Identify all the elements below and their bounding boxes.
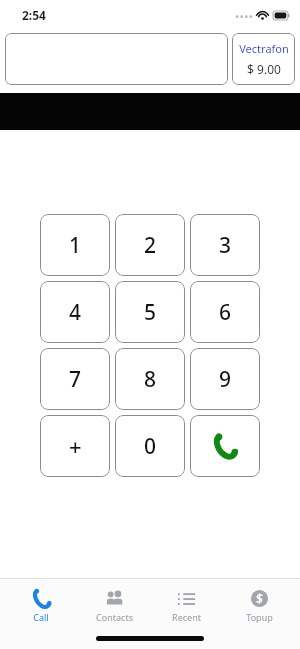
staticText: $ 9.00: [247, 61, 281, 77]
button[interactable]: 5: [115, 281, 185, 343]
staticText: Vectrafon: [239, 41, 289, 56]
button[interactable]: 6: [190, 281, 260, 343]
button[interactable]: 7: [40, 348, 110, 410]
staticText: 5: [144, 298, 157, 327]
staticText: 7: [69, 365, 82, 394]
button[interactable]: Call: [10, 587, 72, 625]
staticText: 3: [219, 231, 232, 260]
button[interactable]: Vectrafon: [232, 33, 295, 85]
button[interactable]: 4: [40, 281, 110, 343]
button[interactable]: Recent: [155, 587, 217, 625]
button[interactable]: Topup: [228, 587, 290, 625]
button[interactable]: 9: [190, 348, 260, 410]
button[interactable]: 1: [40, 214, 110, 276]
staticText: 9: [219, 365, 232, 394]
button[interactable]: Call: [190, 415, 260, 477]
staticText: 0: [144, 432, 157, 461]
button[interactable]: 3: [190, 214, 260, 276]
button[interactable]: 2: [115, 214, 185, 276]
staticText: 1: [69, 231, 82, 260]
staticText: Contacts: [96, 611, 133, 623]
staticText: 4: [69, 298, 82, 327]
button[interactable]: 0: [115, 415, 185, 477]
button[interactable]: 8: [115, 348, 185, 410]
staticText: 2: [144, 231, 157, 260]
staticText: Call: [33, 611, 49, 623]
button[interactable]: [5, 33, 228, 85]
button[interactable]: +: [40, 415, 110, 477]
staticText: 8: [144, 365, 157, 394]
staticText: 6: [219, 298, 232, 327]
staticText: +: [69, 431, 82, 461]
staticText: Recent: [172, 611, 201, 623]
staticText: 2:54: [22, 7, 46, 23]
button[interactable]: Contacts: [83, 587, 145, 625]
staticText: Topup: [246, 611, 273, 623]
